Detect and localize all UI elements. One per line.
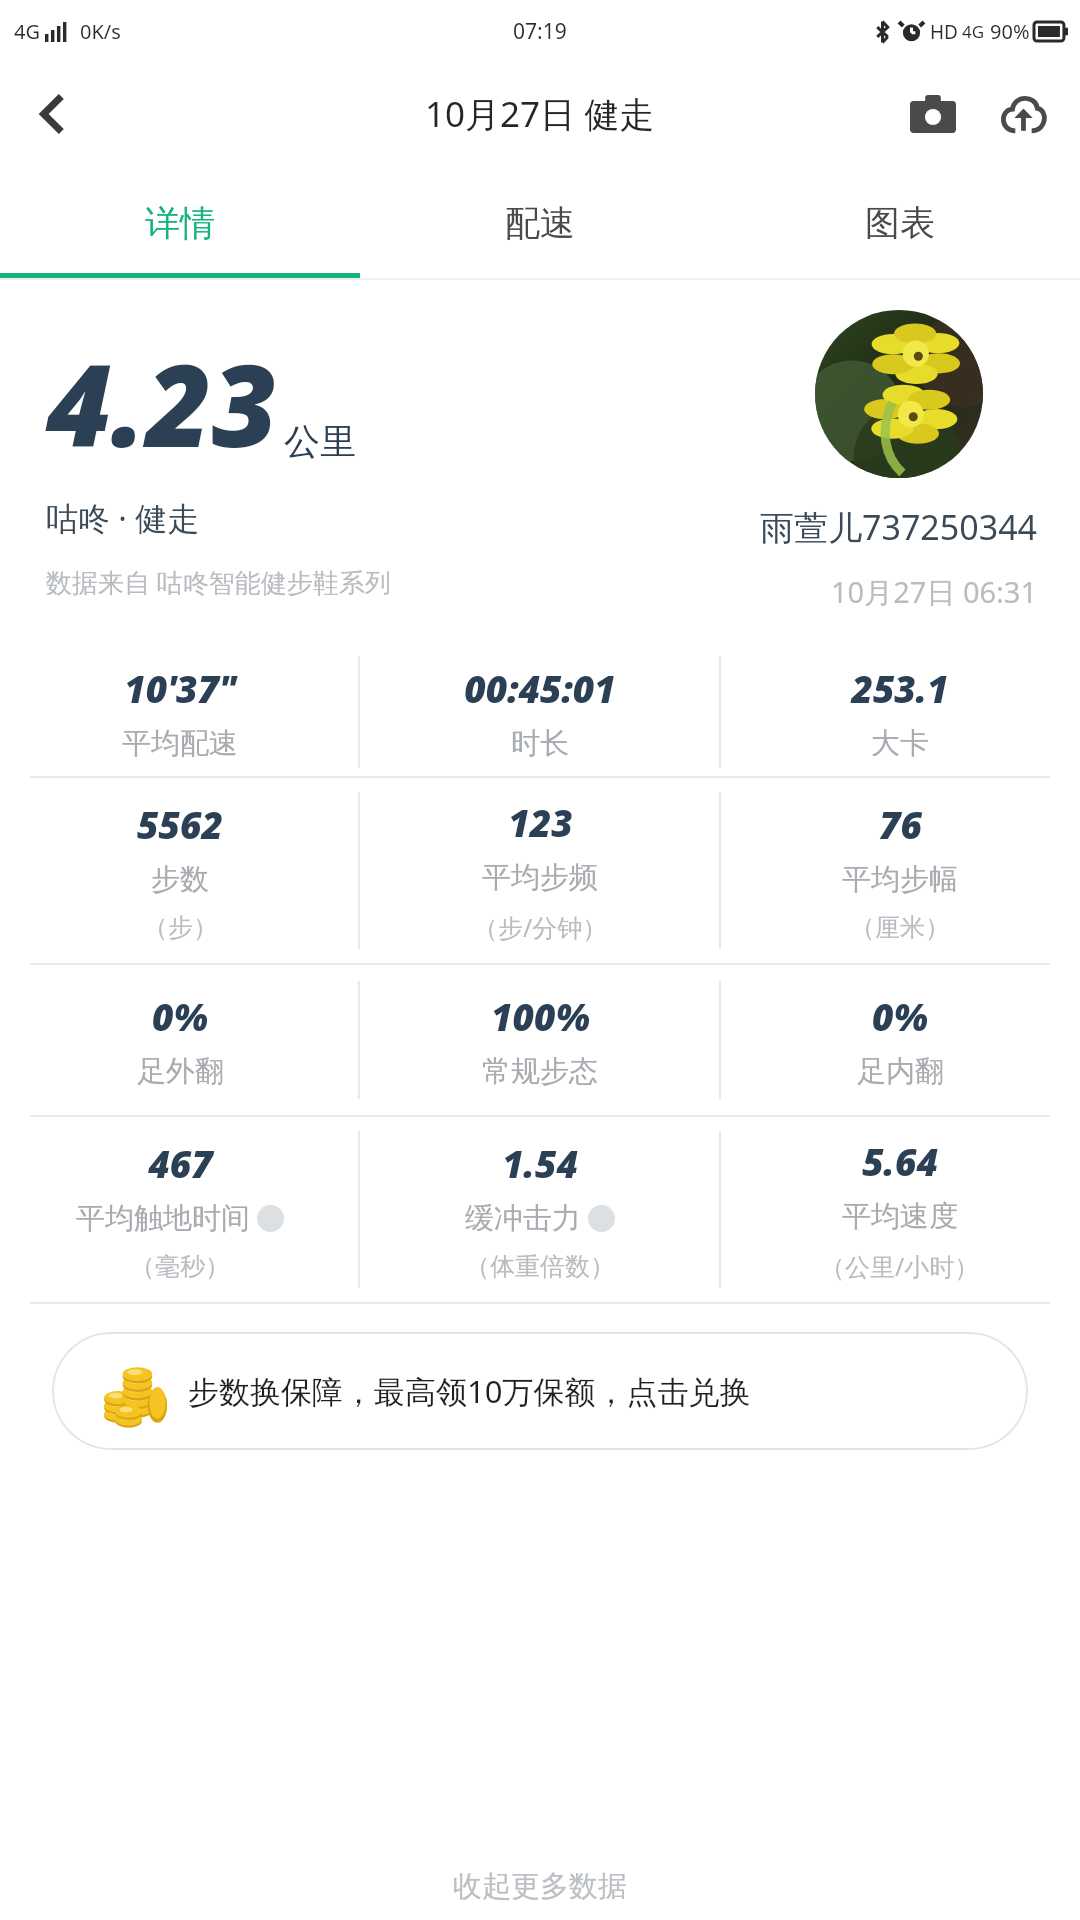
staticText: 图表: [865, 201, 935, 245]
button[interactable]: 5562: [0, 778, 360, 963]
staticText: 常规步态: [482, 1053, 598, 1090]
staticText: 足内翻: [857, 1053, 944, 1090]
staticText: 123: [508, 797, 573, 847]
staticText: 4.23: [46, 326, 278, 480]
staticText: 平均触地时间: [76, 1200, 250, 1237]
button[interactable]: Camera: [900, 81, 966, 147]
staticText: 数据来自 咕咚智能健步鞋系列: [46, 564, 391, 600]
staticText: 时长: [511, 725, 569, 762]
button[interactable]: 5.64: [720, 1117, 1080, 1302]
staticText: 平均步幅: [842, 861, 958, 898]
staticText: 平均速度: [842, 1198, 958, 1235]
staticText: 步数换保障，最高领10万保额，点击兑换: [188, 1370, 751, 1412]
staticText: 0K/s: [80, 18, 121, 45]
button[interactable]: 123: [360, 778, 720, 963]
staticText: 253.1: [851, 663, 949, 713]
staticText: 大卡: [871, 725, 929, 762]
button[interactable]: 收起更多数据: [0, 1868, 1080, 1920]
button[interactable]: Back: [22, 83, 84, 145]
staticText: 雨萱儿737250344: [760, 504, 1038, 550]
staticText: 详情: [145, 201, 215, 245]
staticText: 10月27日 健走: [425, 90, 655, 138]
staticText: （毫秒）: [130, 1251, 230, 1282]
staticText: 10'37": [124, 663, 236, 713]
staticText: 步数: [151, 861, 209, 898]
staticText: 0%: [872, 991, 928, 1041]
button[interactable]: 0%: [720, 965, 1080, 1115]
staticText: （步）: [143, 912, 218, 943]
staticText: 5.64: [862, 1136, 938, 1186]
staticText: （步/分钟）: [473, 910, 608, 944]
staticText: 10月27日 06:31: [831, 572, 1038, 612]
staticText: （厘米）: [850, 912, 950, 943]
button[interactable]: 00:45:01: [360, 648, 720, 776]
staticText: 足外翻: [137, 1053, 224, 1090]
staticText: 4G: [962, 20, 985, 43]
button[interactable]: 详情: [0, 166, 360, 280]
staticText: （体重倍数）: [465, 1251, 615, 1282]
button[interactable]: 76: [720, 778, 1080, 963]
staticText: 收起更多数据: [453, 1868, 627, 1905]
staticText: 467: [148, 1138, 213, 1188]
staticText: 缓冲击力: [465, 1200, 581, 1237]
button[interactable]: User avatar: [815, 310, 983, 478]
staticText: 00:45:01: [464, 663, 616, 713]
button[interactable]: 467: [0, 1117, 360, 1302]
staticText: 公里: [284, 419, 356, 464]
staticText: 平均配速: [122, 725, 238, 762]
button[interactable]: 10'37": [0, 648, 360, 776]
staticText: 76: [879, 799, 922, 849]
staticText: 90%: [990, 18, 1030, 45]
button[interactable]: 1.54: [360, 1117, 720, 1302]
staticText: （公里/小时）: [820, 1249, 980, 1283]
staticText: 100%: [491, 991, 590, 1041]
staticText: HD: [930, 19, 958, 45]
button[interactable]: Upload to cloud: [990, 81, 1056, 147]
staticText: 5562: [137, 799, 223, 849]
button[interactable]: 配速: [360, 166, 720, 280]
button[interactable]: 100%: [360, 965, 720, 1115]
staticText: 配速: [505, 201, 575, 245]
button[interactable]: 0%: [0, 965, 360, 1115]
staticText: 1.54: [502, 1138, 578, 1188]
staticText: 平均步频: [482, 859, 598, 896]
staticText: 07:19: [513, 17, 567, 46]
button[interactable]: 253.1: [720, 648, 1080, 776]
staticText: 4G: [14, 18, 40, 45]
button[interactable]: 图表: [720, 166, 1080, 280]
button[interactable]: 步数换保障，最高领10万保额，点击兑换: [52, 1332, 1028, 1450]
staticText: 0%: [152, 991, 208, 1041]
staticText: 咕咚 · 健走: [46, 496, 200, 540]
